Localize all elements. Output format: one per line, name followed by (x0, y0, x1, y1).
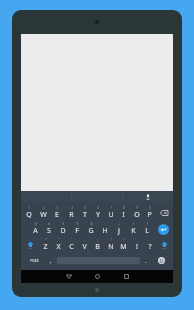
button[interactable]: Voice input (123, 191, 173, 202)
button[interactable]: Home button (95, 288, 99, 292)
button[interactable]: ? (143, 237, 156, 253)
staticText: 4 (71, 206, 73, 210)
staticText: * (45, 238, 47, 242)
button[interactable]: 2 (36, 204, 50, 221)
staticText: % (76, 222, 79, 226)
button[interactable]: & (84, 221, 98, 237)
button[interactable]: Shift (156, 237, 172, 253)
button[interactable]: 1 (22, 204, 36, 221)
staticText: F (75, 226, 79, 236)
staticText: $ (62, 222, 64, 226)
staticText: R (69, 210, 74, 220)
staticText: O (134, 210, 140, 220)
staticText: G (88, 226, 94, 236)
staticText: B (95, 242, 100, 252)
staticText: 6 (97, 206, 99, 210)
staticText: + (118, 222, 120, 226)
staticText: . (145, 257, 147, 265)
button[interactable]: 3 (50, 204, 64, 221)
staticText: ! (111, 238, 112, 242)
staticText: L (145, 226, 149, 236)
staticText: 0 (149, 206, 151, 210)
staticText: U (108, 210, 114, 220)
staticText: 7 (110, 206, 112, 210)
staticText: 3 (56, 206, 58, 210)
button[interactable]: ! (104, 237, 117, 253)
button[interactable]: ( (126, 221, 140, 237)
staticText: W (40, 210, 47, 220)
button[interactable]: 8 (117, 204, 130, 221)
staticText: , (50, 257, 52, 265)
button[interactable]: 5 (78, 204, 91, 221)
staticText: @ (34, 222, 37, 226)
button[interactable]: - (98, 221, 112, 237)
staticText: ) (147, 222, 148, 226)
button[interactable]: Enter (154, 221, 172, 237)
button[interactable]: Shift (22, 237, 39, 253)
staticText: C (69, 242, 74, 252)
staticText: ; (97, 238, 98, 242)
button[interactable]: . (140, 253, 152, 268)
staticText: ? (123, 238, 125, 242)
staticText: V (82, 242, 87, 252)
staticText: ?123 (30, 258, 39, 263)
button[interactable]: : (78, 237, 91, 253)
staticText: 5 (84, 206, 86, 210)
staticText: ( (133, 222, 134, 226)
button[interactable]: " (52, 237, 65, 253)
button[interactable]: 4 (64, 204, 78, 221)
button[interactable]: % (70, 221, 84, 237)
button[interactable]: Recent apps (112, 270, 141, 283)
button[interactable]: ' (65, 237, 78, 253)
button[interactable]: 6 (91, 204, 104, 221)
staticText: 2 (43, 206, 45, 210)
staticText: Q (26, 210, 32, 220)
staticText: K (131, 226, 136, 236)
button[interactable]: ; (91, 237, 104, 253)
button[interactable]: ! (130, 237, 143, 253)
button[interactable]: , (45, 253, 57, 268)
staticText: X (56, 242, 61, 252)
button[interactable]: ) (140, 221, 154, 237)
staticText: & (90, 222, 93, 226)
staticText: I (122, 210, 125, 220)
button[interactable]: Emoji (152, 253, 171, 268)
button[interactable]: 9 (130, 204, 143, 221)
staticText: J (118, 226, 120, 236)
staticText: - (105, 222, 106, 226)
button[interactable]: 7 (104, 204, 117, 221)
button[interactable]: Backspace (156, 204, 172, 221)
staticText: M (120, 242, 127, 252)
staticText: ' (71, 238, 72, 242)
button[interactable]: @ (29, 221, 42, 237)
staticText: S (47, 226, 51, 236)
staticText: 9 (136, 206, 138, 210)
staticText: ! (136, 242, 138, 252)
button[interactable]: $ (56, 221, 70, 237)
staticText: A (33, 226, 38, 236)
staticText: : (84, 238, 85, 242)
button[interactable]: ? (117, 237, 130, 253)
button[interactable]: Home (83, 270, 112, 283)
staticText: ? (148, 242, 152, 252)
staticText: Y (96, 210, 100, 220)
staticText: E (55, 210, 59, 220)
staticText: H (102, 226, 108, 236)
staticText: 8 (123, 206, 125, 210)
button[interactable]: # (42, 221, 56, 237)
staticText: 1 (28, 206, 30, 210)
staticText: # (48, 222, 50, 226)
button[interactable]: ?123 (23, 253, 45, 268)
button[interactable]: Back (54, 270, 83, 283)
button[interactable]: + (112, 221, 126, 237)
button[interactable]: * (39, 237, 52, 253)
staticText: " (58, 238, 60, 242)
button[interactable]: 0 (143, 204, 156, 221)
staticText: P (147, 210, 152, 220)
staticText: Z (43, 242, 48, 252)
staticText: D (60, 226, 66, 236)
